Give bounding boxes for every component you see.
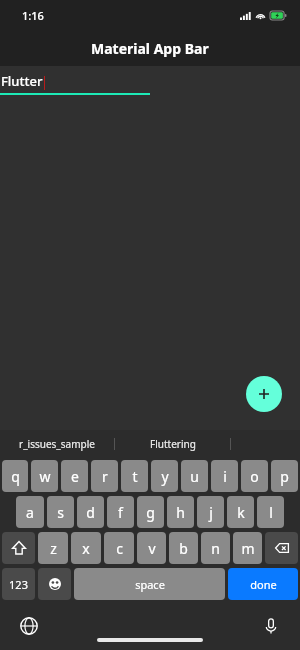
staticText: p — [280, 467, 289, 486]
staticText: space — [135, 577, 165, 592]
staticText: u — [190, 467, 199, 486]
staticText: Fluttering — [150, 437, 196, 451]
button[interactable]: i — [211, 460, 238, 492]
button[interactable]: p — [271, 460, 298, 492]
staticText: v — [148, 539, 156, 558]
button[interactable]: y — [151, 460, 178, 492]
staticText: done — [250, 577, 277, 592]
staticText: n — [211, 539, 220, 558]
staticText: z — [50, 539, 57, 558]
button[interactable]: Fluttering — [115, 430, 230, 458]
button[interactable]: c — [104, 532, 134, 564]
staticText: e — [71, 467, 79, 486]
button[interactable]: e — [61, 460, 88, 492]
staticText: r — [102, 467, 108, 486]
button[interactable]: Voice input — [260, 615, 282, 637]
staticText: q — [11, 467, 20, 486]
button[interactable]: a — [16, 496, 44, 528]
staticText: d — [86, 503, 95, 522]
staticText: w — [39, 467, 51, 486]
button[interactable]: t — [121, 460, 148, 492]
button[interactable]: j — [197, 496, 224, 528]
staticText: h — [176, 503, 185, 522]
button[interactable]: u — [181, 460, 208, 492]
staticText: i — [223, 467, 227, 486]
staticText: t — [132, 467, 138, 486]
staticText: s — [57, 503, 64, 522]
button[interactable]: Shift — [2, 532, 35, 564]
button[interactable]: g — [137, 496, 164, 528]
button[interactable]: Change keyboard — [18, 615, 40, 637]
button[interactable]: x — [71, 532, 101, 564]
button[interactable]: q — [2, 460, 28, 492]
staticText: j — [209, 503, 213, 522]
button[interactable]: m — [233, 532, 262, 564]
button[interactable]: s — [47, 496, 74, 528]
button[interactable]: space — [74, 568, 225, 600]
button[interactable]: 123 — [2, 568, 35, 600]
staticText: c — [116, 539, 123, 558]
staticText: l — [269, 503, 273, 522]
button[interactable]: done — [228, 568, 298, 600]
staticText: o — [250, 467, 259, 486]
staticText: g — [146, 503, 155, 522]
button[interactable]: w — [31, 460, 58, 492]
button[interactable]: k — [227, 496, 254, 528]
button[interactable]: h — [167, 496, 194, 528]
staticText: Flutter — [1, 72, 43, 90]
staticText: 123 — [9, 577, 28, 592]
button[interactable]: r_issues_sample — [0, 430, 114, 458]
staticText: Material App Bar — [91, 39, 209, 58]
staticText: f — [118, 503, 123, 522]
button[interactable]: Add — [246, 376, 282, 412]
button[interactable]: f — [107, 496, 134, 528]
staticText: r_issues_sample — [19, 437, 95, 451]
staticText: b — [179, 539, 188, 558]
button[interactable]: Backspace — [265, 532, 298, 564]
button[interactable]: d — [77, 496, 104, 528]
staticText: x — [82, 539, 90, 558]
button[interactable]: Emoji — [38, 568, 71, 600]
button[interactable]: v — [137, 532, 166, 564]
button[interactable]: r — [91, 460, 118, 492]
staticText: a — [26, 503, 34, 522]
button[interactable]: l — [257, 496, 284, 528]
staticText: 1:16 — [22, 8, 44, 23]
staticText: k — [237, 503, 245, 522]
staticText: m — [241, 539, 255, 558]
button[interactable]: n — [201, 532, 230, 564]
button[interactable]: b — [169, 532, 198, 564]
button[interactable]: o — [241, 460, 268, 492]
staticText: y — [161, 467, 169, 486]
button[interactable]: z — [38, 532, 68, 564]
